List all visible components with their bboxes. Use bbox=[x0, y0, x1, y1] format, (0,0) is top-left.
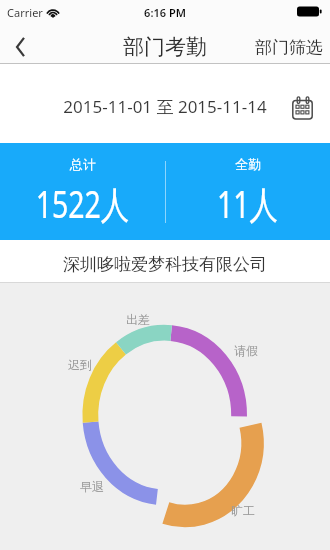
button[interactable] bbox=[0, 25, 40, 63]
staticText: 1522人 bbox=[35, 178, 129, 229]
staticText: 请假 bbox=[234, 343, 258, 358]
button[interactable]: 全勤 bbox=[165, 143, 330, 240]
button[interactable]: 总计 bbox=[0, 143, 165, 240]
staticText: 全勤 bbox=[235, 156, 261, 172]
staticText: 迟到 bbox=[68, 357, 92, 372]
staticText: 部门考勤 bbox=[123, 34, 207, 60]
staticText: 早退 bbox=[80, 479, 104, 494]
staticText: 2015-11-01 至 2015-11-14 bbox=[63, 95, 267, 118]
button[interactable]: 部门筛选 bbox=[247, 25, 330, 63]
staticText: 旷工 bbox=[231, 503, 255, 518]
button[interactable]: 深圳哆啦爱梦科技有限公司 bbox=[0, 240, 330, 282]
staticText: 6:16 PM bbox=[144, 5, 186, 20]
staticText: 部门筛选 bbox=[255, 37, 323, 58]
staticText: Carrier bbox=[7, 5, 43, 20]
staticText: 11人 bbox=[217, 178, 278, 229]
staticText: 出差 bbox=[126, 312, 150, 327]
button[interactable]: 2015-11-01 至 2015-11-14 bbox=[0, 64, 330, 143]
staticText: 总计 bbox=[70, 156, 96, 172]
staticText: 深圳哆啦爱梦科技有限公司 bbox=[63, 254, 267, 275]
